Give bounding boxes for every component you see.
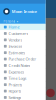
button[interactable]: Expenses bbox=[0, 69, 45, 75]
button[interactable]: Time Logs bbox=[0, 75, 45, 81]
staticText: Time Logs bbox=[8, 76, 26, 81]
button[interactable]: Reports bbox=[0, 88, 45, 94]
staticText: Invoices bbox=[8, 44, 22, 49]
staticText: Vendors bbox=[8, 37, 22, 42]
button[interactable]: Purchase Order bbox=[0, 56, 45, 62]
button[interactable]: Estimates bbox=[0, 49, 45, 56]
button[interactable]: Settings bbox=[0, 94, 45, 100]
staticText: Moon Invoice bbox=[12, 9, 37, 14]
staticText: Purchase Order bbox=[8, 56, 36, 62]
staticText: Estimates bbox=[8, 50, 25, 55]
staticText: ▾ bbox=[17, 20, 18, 23]
button[interactable]: Home bbox=[0, 24, 45, 30]
staticText: Reports bbox=[8, 88, 21, 94]
button[interactable]: Vendors bbox=[0, 37, 45, 43]
staticText: Customers bbox=[8, 31, 28, 36]
staticText: Settings bbox=[8, 95, 21, 100]
button[interactable]: Personal bbox=[0, 19, 45, 24]
staticText: Projects bbox=[8, 82, 22, 87]
button[interactable]: Invoices bbox=[0, 43, 45, 49]
button[interactable]: Customers bbox=[0, 30, 45, 37]
button[interactable]: Projects bbox=[0, 81, 45, 88]
button[interactable]: Credit Notes bbox=[0, 62, 45, 69]
staticText: Home bbox=[8, 24, 19, 30]
staticText: Credit Notes bbox=[8, 63, 30, 68]
staticText: Expenses bbox=[8, 69, 24, 74]
staticText: Personal bbox=[3, 20, 15, 23]
